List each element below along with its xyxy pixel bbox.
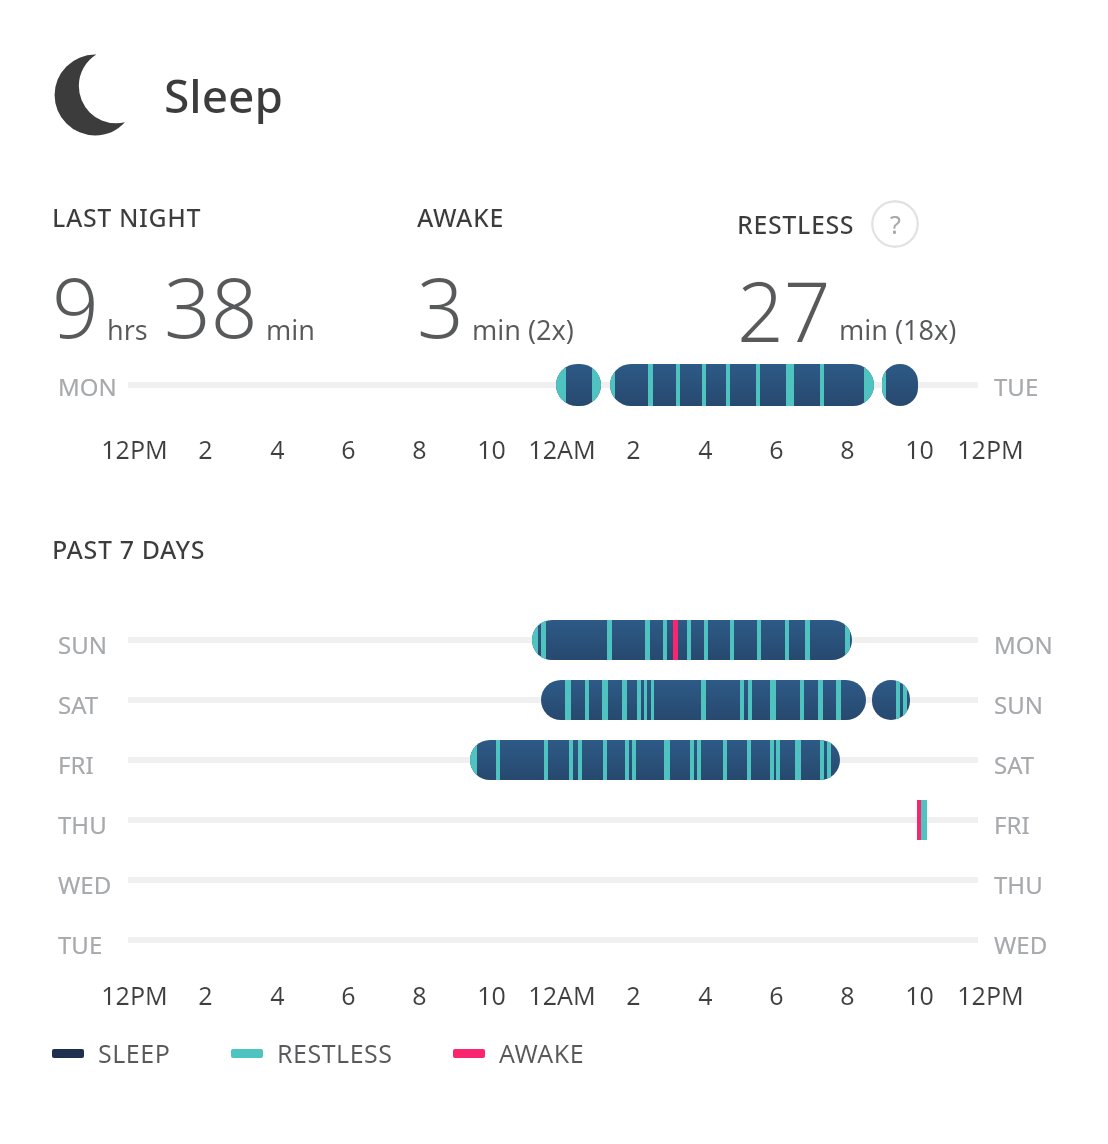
button[interactable]: Help about restless sleep — [871, 200, 919, 248]
staticText: 4 — [698, 432, 713, 466]
staticText: 27 — [737, 254, 831, 360]
staticText: 12PM — [957, 978, 1024, 1012]
staticText: 10 — [905, 978, 934, 1012]
staticText: 12PM — [957, 432, 1024, 466]
staticText: FRI — [994, 808, 1030, 841]
button[interactable]: Sleep — [52, 52, 284, 138]
staticText: SUN — [58, 628, 107, 661]
staticText: RESTLESS — [737, 207, 855, 241]
staticText: 4 — [698, 978, 713, 1012]
staticText: 12PM — [101, 978, 168, 1012]
staticText: THU — [58, 808, 107, 841]
staticText: 12AM — [528, 978, 596, 1012]
staticText: 9 — [52, 250, 99, 360]
staticText: MON — [58, 370, 117, 403]
staticText: 6 — [769, 432, 784, 466]
staticText: LAST NIGHT — [52, 200, 202, 234]
staticText: RESTLESS — [277, 1036, 393, 1070]
staticText: 2 — [198, 978, 213, 1012]
staticText: WED — [58, 868, 112, 901]
staticText: TUE — [58, 928, 103, 961]
staticText: 12PM — [101, 432, 168, 466]
staticText: min — [266, 311, 315, 348]
staticText: AWAKE — [499, 1036, 585, 1070]
staticText: SAT — [58, 688, 99, 721]
staticText: AWAKE — [417, 200, 505, 234]
staticText: ? — [890, 207, 901, 241]
staticText: 38 — [164, 250, 258, 360]
staticText: Sleep — [164, 64, 284, 127]
button[interactable]: RESTLESS — [737, 200, 957, 360]
staticText: 2 — [626, 432, 641, 466]
staticText: SAT — [994, 748, 1035, 781]
staticText: 12AM — [528, 432, 596, 466]
staticText: 10 — [477, 432, 506, 466]
staticText: min (2x) — [472, 311, 574, 348]
staticText: 10 — [905, 432, 934, 466]
staticText: WED — [994, 928, 1048, 961]
button[interactable]: RESTLESS — [231, 1036, 393, 1070]
staticText: 6 — [769, 978, 784, 1012]
staticText: THU — [994, 868, 1043, 901]
staticText: PAST 7 DAYS — [52, 532, 206, 566]
staticText: 6 — [341, 432, 356, 466]
staticText: TUE — [994, 370, 1039, 403]
button[interactable]: AWAKE — [453, 1036, 585, 1070]
staticText: 6 — [341, 978, 356, 1012]
staticText: 2 — [198, 432, 213, 466]
other: Sleep — [52, 52, 138, 138]
staticText: 8 — [840, 432, 855, 466]
staticText: min (18x) — [839, 311, 957, 348]
button[interactable]: SLEEP — [52, 1036, 171, 1070]
staticText: MON — [994, 628, 1053, 661]
staticText: 10 — [477, 978, 506, 1012]
staticText: 8 — [412, 432, 427, 466]
staticText: FRI — [58, 748, 94, 781]
button[interactable]: LAST NIGHT — [52, 200, 315, 360]
staticText: 2 — [626, 978, 641, 1012]
staticText: 8 — [412, 978, 427, 1012]
staticText: SLEEP — [98, 1036, 171, 1070]
staticText: SUN — [994, 688, 1043, 721]
staticText: 8 — [840, 978, 855, 1012]
staticText: hrs — [107, 311, 148, 348]
button[interactable]: AWAKE — [417, 200, 574, 360]
staticText: 4 — [270, 432, 285, 466]
staticText: 4 — [270, 978, 285, 1012]
staticText: 3 — [417, 250, 464, 360]
